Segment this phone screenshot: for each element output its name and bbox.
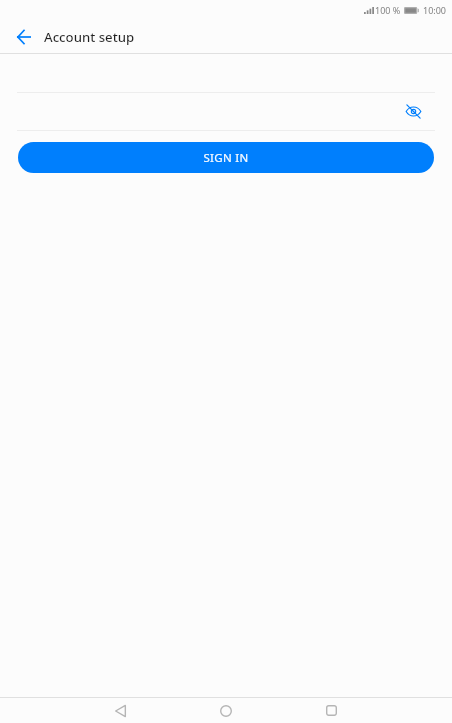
staticText: 100 % [375, 4, 401, 16]
button[interactable]: Back [6, 21, 42, 53]
staticText: Account setup [44, 28, 135, 46]
button[interactable]: Password field [17, 102, 435, 131]
staticText: 10:00 [423, 4, 447, 16]
button[interactable]: Home [203, 698, 249, 723]
button[interactable]: SIGN IN [18, 142, 434, 173]
button[interactable]: Show password [397, 95, 429, 127]
staticText: SIGN IN [203, 150, 249, 166]
button[interactable]: Back [98, 698, 143, 723]
button[interactable]: Recent apps [308, 698, 354, 723]
